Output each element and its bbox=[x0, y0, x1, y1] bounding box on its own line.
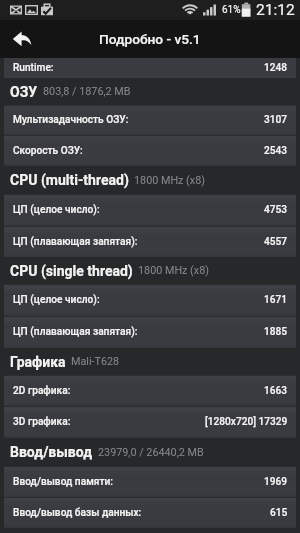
staticText: 21:12 bbox=[256, 1, 295, 19]
staticText: 61% bbox=[222, 4, 241, 16]
staticText: Скорость ОЗУ: bbox=[13, 145, 83, 157]
staticText: Мультизадачность ОЗУ: bbox=[13, 114, 129, 126]
button[interactable]: Мультизадачность ОЗУ: bbox=[4, 105, 296, 135]
staticText: 23979,0 / 26440,2 MB bbox=[98, 446, 204, 459]
staticText: ЦП (плавающая запятая): bbox=[13, 236, 138, 248]
staticText: ЦП (целое число): bbox=[13, 294, 100, 306]
button[interactable]: ЦП (целое число): bbox=[4, 284, 296, 316]
staticText: Графика bbox=[10, 354, 66, 370]
button[interactable]: ЦП (плавающая запятая): bbox=[4, 226, 296, 257]
staticText: [1280x720] 17329 bbox=[205, 416, 288, 428]
staticText: ЦП (плавающая запятая): bbox=[13, 326, 138, 338]
staticText: 1800 MHz (x8) bbox=[138, 264, 209, 277]
button[interactable]: 3D графика: bbox=[4, 406, 296, 438]
staticText: 803,8 / 1876,2 MB bbox=[43, 85, 131, 98]
staticText: CPU (single thread) bbox=[10, 263, 133, 279]
staticText: 3D графика: bbox=[13, 416, 71, 428]
staticText: Ввод/вывод bbox=[10, 444, 93, 460]
staticText: Runtime: bbox=[13, 62, 54, 74]
staticText: 2D графика: bbox=[13, 385, 71, 397]
staticText: 1885 bbox=[264, 326, 288, 338]
button[interactable]: ЦП (плавающая запятая): bbox=[4, 316, 296, 348]
staticText: 2543 bbox=[264, 145, 288, 157]
staticText: 3107 bbox=[264, 114, 288, 126]
button[interactable]: ЦП (целое число): bbox=[4, 194, 296, 226]
staticText: CPU (multi-thread) bbox=[10, 172, 129, 188]
button[interactable]: 2D графика: bbox=[4, 375, 296, 406]
staticText: 1800 MHz (x8) bbox=[134, 174, 205, 187]
staticText: 615 bbox=[270, 507, 288, 519]
button[interactable]: Runtime: bbox=[4, 58, 296, 78]
staticText: Ввод/вывод памяти: bbox=[13, 476, 113, 488]
staticText: Ввод/вывод базы данных: bbox=[13, 507, 142, 519]
staticText: 1248 bbox=[264, 62, 288, 74]
staticText: 1663 bbox=[264, 385, 288, 397]
staticText: 4753 bbox=[264, 204, 288, 216]
staticText: Mali-T628 bbox=[71, 355, 120, 368]
staticText: Подробно - v5.1 bbox=[99, 31, 201, 47]
button[interactable]: Скорость ОЗУ: bbox=[4, 135, 296, 166]
button[interactable]: Ввод/вывод памяти: bbox=[4, 466, 296, 497]
staticText: ЦП (целое число): bbox=[13, 204, 100, 216]
staticText: 4557 bbox=[264, 236, 288, 248]
button[interactable]: Ввод/вывод базы данных: bbox=[4, 497, 296, 528]
staticText: ОЗУ bbox=[10, 84, 38, 100]
staticText: 1671 bbox=[264, 294, 288, 306]
staticText: 1969 bbox=[264, 476, 288, 488]
button[interactable]: Назад bbox=[0, 20, 44, 58]
